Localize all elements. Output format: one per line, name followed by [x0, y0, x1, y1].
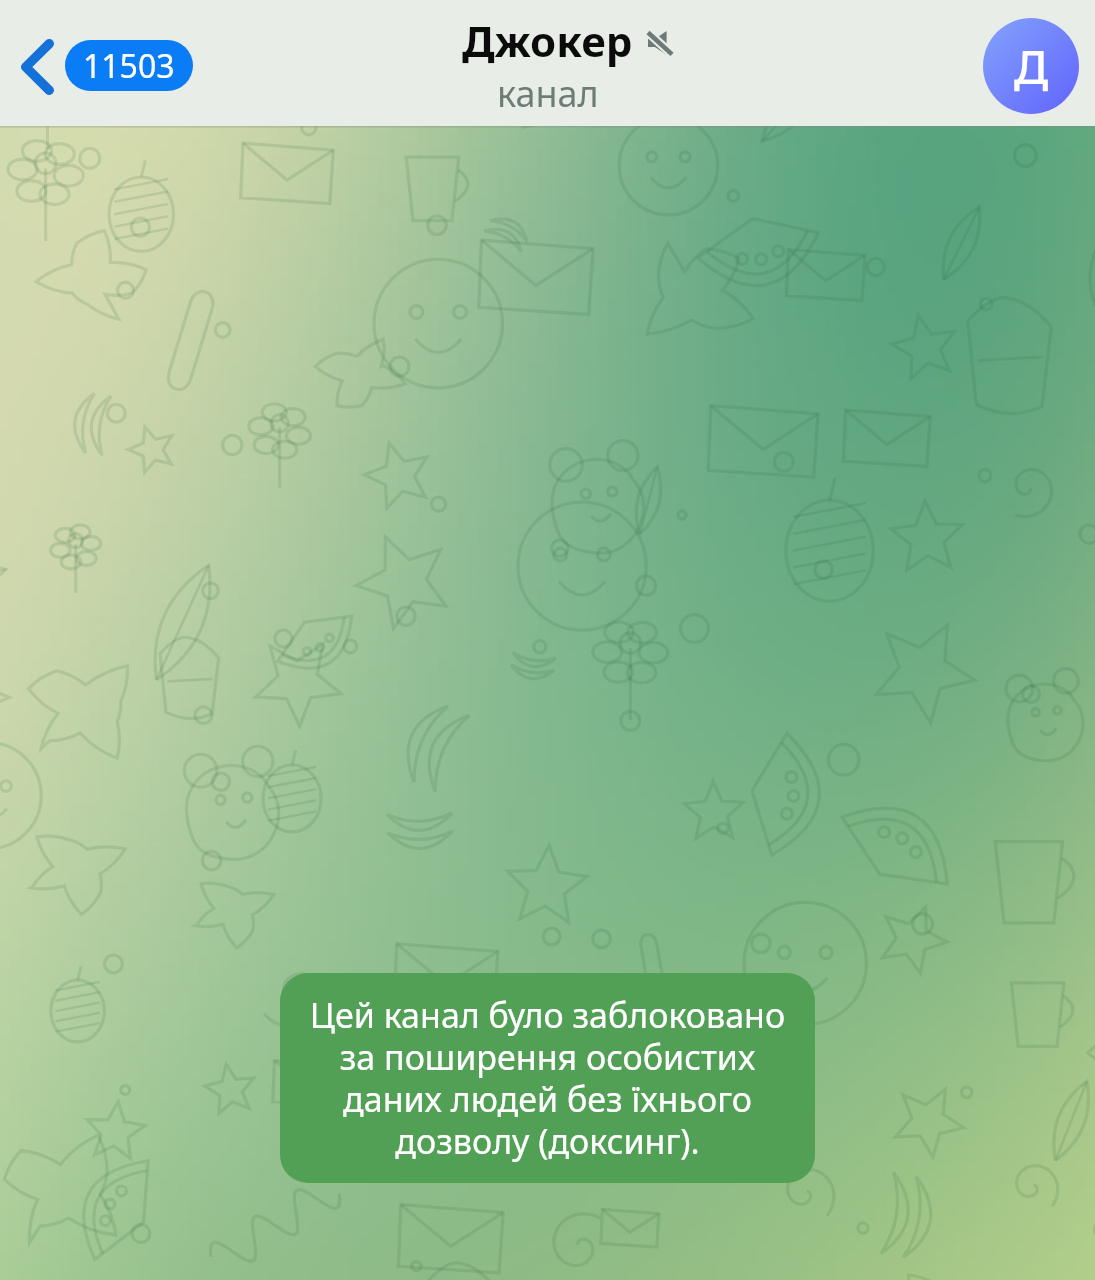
staticText: Джокер: [462, 12, 633, 69]
button[interactable]: Back: [6, 36, 68, 98]
staticText: Д: [1014, 35, 1049, 98]
staticText: Цей канал було заблоковано за поширення …: [302, 992, 793, 1164]
button[interactable]: Цей канал було заблоковано за поширення …: [280, 973, 815, 1183]
staticText: 11503: [83, 44, 175, 88]
button[interactable]: 11503: [65, 40, 193, 91]
button[interactable]: Profile: [983, 18, 1079, 114]
staticText: канал: [497, 69, 599, 118]
